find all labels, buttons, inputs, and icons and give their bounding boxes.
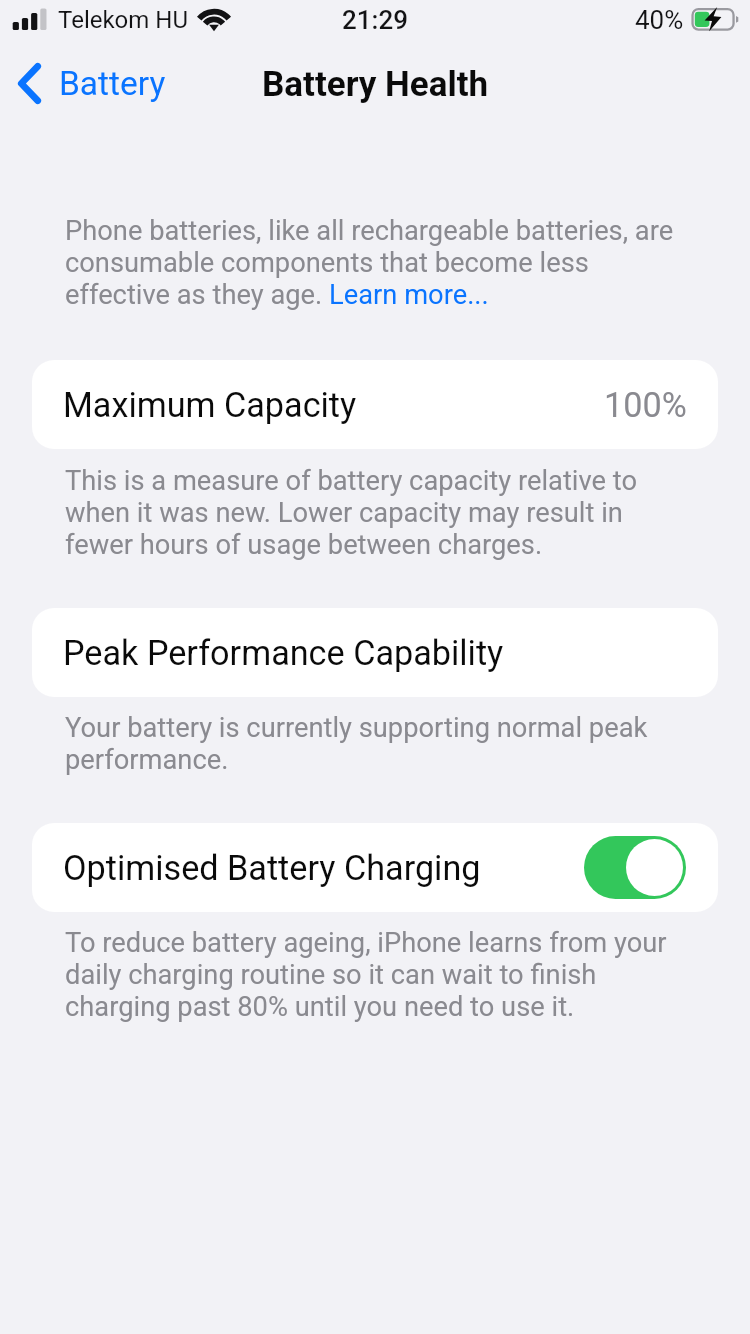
staticText: Maximum Capacity bbox=[63, 385, 357, 425]
button[interactable]: Maximum Capacity bbox=[32, 360, 718, 449]
staticText: Your battery is currently supporting nor… bbox=[65, 712, 690, 776]
button[interactable]: Learn more bbox=[332, 277, 490, 311]
staticText: 40% bbox=[635, 5, 684, 35]
other: Back bbox=[18, 63, 41, 104]
staticText: Telekom HU bbox=[58, 6, 188, 34]
staticText: Optimised Battery Charging bbox=[63, 848, 481, 888]
staticText: 100% bbox=[604, 385, 687, 425]
button[interactable]: Back bbox=[11, 57, 178, 110]
button[interactable]: Peak Performance Capability bbox=[32, 608, 718, 697]
staticText: To reduce battery ageing, iPhone learns … bbox=[65, 927, 690, 1023]
staticText: Battery bbox=[59, 64, 166, 103]
staticText: Battery Health bbox=[262, 64, 489, 105]
staticText: Phone batteries, like all rechargeable b… bbox=[65, 215, 690, 311]
staticText: Peak Performance Capability bbox=[63, 633, 504, 673]
button[interactable]: Optimised Battery Charging bbox=[32, 823, 718, 912]
staticText: 21:29 bbox=[342, 5, 408, 35]
staticText: This is a measure of battery capacity re… bbox=[65, 465, 690, 561]
button[interactable]: Optimised Battery Charging toggle, on bbox=[584, 836, 686, 899]
